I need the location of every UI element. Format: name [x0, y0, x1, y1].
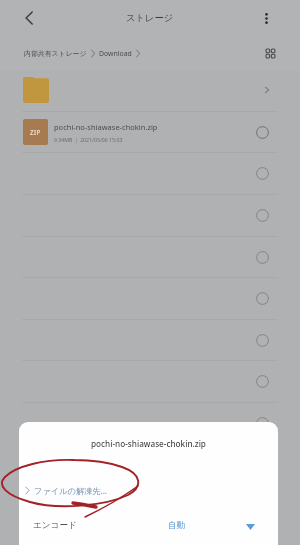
staticText: pochi-no-shiawase-chokin.zip	[91, 438, 206, 449]
button[interactable]	[0, 69, 300, 111]
button[interactable]: ZIP	[0, 111, 300, 153]
staticText: pochi-no-shiawase-chokin.zip	[54, 122, 158, 132]
button[interactable]	[0, 526, 300, 545]
staticText: 9.34MB ｜ 2021/05/06 15:03	[54, 136, 123, 143]
button[interactable]	[0, 485, 300, 527]
button[interactable]: More options	[255, 7, 277, 29]
button[interactable]	[0, 111, 300, 153]
staticText: ZIP	[30, 128, 41, 136]
button[interactable]: Grid view	[260, 43, 280, 63]
staticText: エンコード	[33, 520, 77, 531]
button[interactable]: Back	[17, 6, 41, 30]
button[interactable]	[0, 443, 300, 485]
button[interactable]: ファイルの解凍先...	[25, 485, 108, 496]
button[interactable]	[0, 402, 300, 444]
button[interactable]: エンコード	[19, 514, 278, 545]
button[interactable]: 内部共有ストレージ	[24, 49, 87, 58]
staticText: ファイルの解凍先...	[34, 485, 108, 496]
staticText: 自動	[168, 520, 186, 531]
button[interactable]: Download	[99, 49, 132, 58]
button[interactable]	[0, 69, 300, 111]
staticText: ストレージ	[126, 12, 174, 24]
